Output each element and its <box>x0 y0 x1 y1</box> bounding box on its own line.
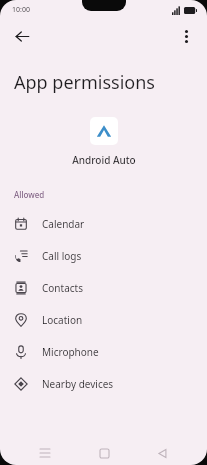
button[interactable]: Location <box>0 304 207 336</box>
button[interactable]: Recent apps <box>32 441 58 465</box>
button[interactable]: Contacts <box>0 272 207 304</box>
staticText: Microphone <box>42 345 99 359</box>
staticText: Android Auto <box>72 153 136 167</box>
button[interactable]: Calendar <box>0 208 207 240</box>
button[interactable]: More options <box>171 21 201 51</box>
staticText: 10:00 <box>12 5 30 15</box>
staticText: Calendar <box>42 217 85 231</box>
staticText: Contacts <box>42 281 83 295</box>
staticText: Nearby devices <box>42 377 114 391</box>
button[interactable]: Home <box>91 441 117 465</box>
staticText: Location <box>42 313 83 327</box>
button[interactable]: Back <box>149 441 175 465</box>
button[interactable]: Back <box>6 20 38 52</box>
button[interactable]: Nearby devices <box>0 368 207 400</box>
button[interactable]: Microphone <box>0 336 207 368</box>
staticText: App permissions <box>14 70 155 95</box>
staticText: Allowed <box>14 189 45 200</box>
staticText: Call logs <box>42 249 82 263</box>
button[interactable]: Call logs <box>0 240 207 272</box>
